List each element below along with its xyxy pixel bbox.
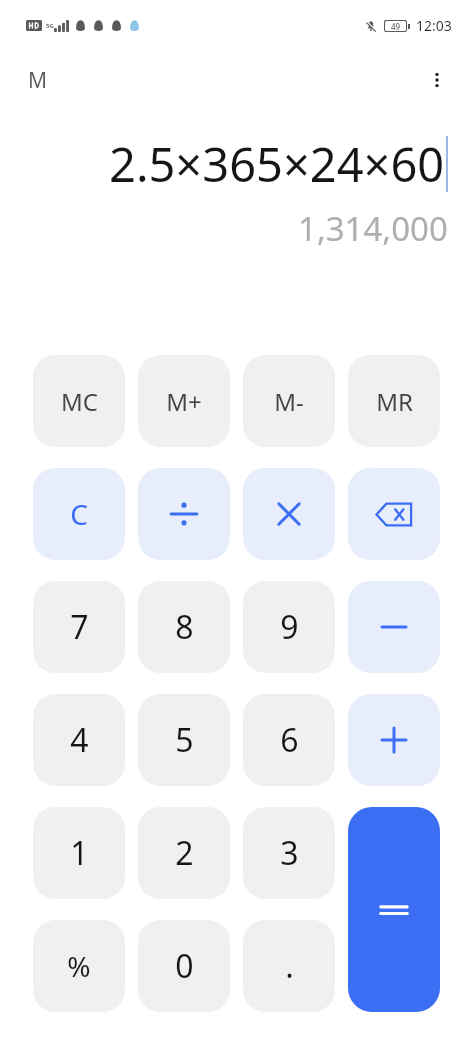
button[interactable]: 3 [243,807,335,899]
button[interactable]: Equals [348,807,440,1012]
staticText: 4 [70,718,89,762]
staticText: 7 [70,605,89,649]
staticText: M+ [166,385,202,418]
button[interactable]: 1 [33,807,125,899]
button[interactable]: Minus [348,581,440,673]
staticText: M- [274,385,304,418]
staticText: 6 [280,718,299,762]
staticText: 12:03 [416,16,452,35]
button[interactable]: 7 [33,581,125,673]
button[interactable]: 0 [138,920,230,1012]
button[interactable]: Multiply [243,468,335,560]
staticText: 5G [46,22,54,30]
button[interactable]: 8 [138,581,230,673]
staticText: 0 [175,944,194,988]
button[interactable]: 6 [243,694,335,786]
staticText: 49 [391,21,401,31]
staticText: 5 [175,718,194,762]
button[interactable]: M+ [138,355,230,447]
staticText: MR [376,385,413,418]
button[interactable]: M- [243,355,335,447]
staticText: 9 [280,605,299,649]
button[interactable]: 5 [138,694,230,786]
staticText: 1 [70,831,89,875]
button[interactable]: Divide [138,468,230,560]
staticText: 1,314,000 [298,206,448,251]
button[interactable]: MR [348,355,440,447]
button[interactable]: 9 [243,581,335,673]
staticText: 3 [280,831,299,875]
button[interactable]: C [33,468,125,560]
button[interactable]: . [243,920,335,1012]
button[interactable]: M [22,60,54,101]
staticText: C [70,495,88,533]
staticText: M [28,66,48,95]
button[interactable]: More options [414,57,460,103]
button[interactable]: % [33,920,125,1012]
staticText: . [285,944,294,988]
button[interactable]: 2 [138,807,230,899]
staticText: % [67,947,91,985]
staticText: 8 [175,605,194,649]
button[interactable]: MC [33,355,125,447]
staticText: MC [61,385,98,418]
staticText: 2 [175,831,194,875]
button[interactable]: Backspace [348,468,440,560]
button[interactable]: Plus [348,694,440,786]
staticText: 2.5×365×24×60 [109,132,445,196]
button[interactable]: 4 [33,694,125,786]
